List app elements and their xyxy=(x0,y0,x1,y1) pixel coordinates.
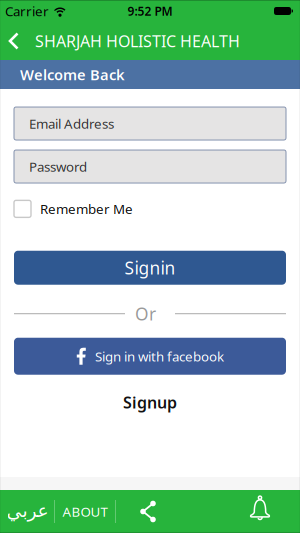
button[interactable]: Notifications xyxy=(240,490,300,533)
button[interactable]: Back xyxy=(0,31,24,50)
staticText: Carrier xyxy=(5,2,49,20)
staticText: Sign in with facebook xyxy=(95,347,224,365)
button[interactable]: Remember Me xyxy=(14,200,286,218)
staticText: Signin xyxy=(124,256,175,279)
staticText: Signup xyxy=(123,392,177,413)
staticText: Email Address xyxy=(29,115,114,132)
staticText: SHARJAH HOLISTIC HEALTH xyxy=(35,30,240,52)
staticText: ABOUT xyxy=(62,503,107,520)
staticText: Welcome Back xyxy=(20,65,125,84)
staticText: Remember Me xyxy=(40,200,133,218)
button[interactable]: Signin xyxy=(14,251,286,285)
button[interactable]: عربي xyxy=(0,490,54,533)
button[interactable]: Share xyxy=(116,490,180,533)
button[interactable]: Signup xyxy=(123,392,177,413)
staticText: Or xyxy=(135,302,156,325)
staticText: عربي xyxy=(6,500,48,521)
button[interactable]: Password xyxy=(14,150,286,183)
button[interactable]: Email Address xyxy=(14,107,286,140)
staticText: 9:52 PM xyxy=(127,3,172,19)
staticText: Password xyxy=(29,158,87,175)
button[interactable]: ABOUT xyxy=(55,490,115,533)
button[interactable]: Sign in with facebook xyxy=(14,338,286,375)
